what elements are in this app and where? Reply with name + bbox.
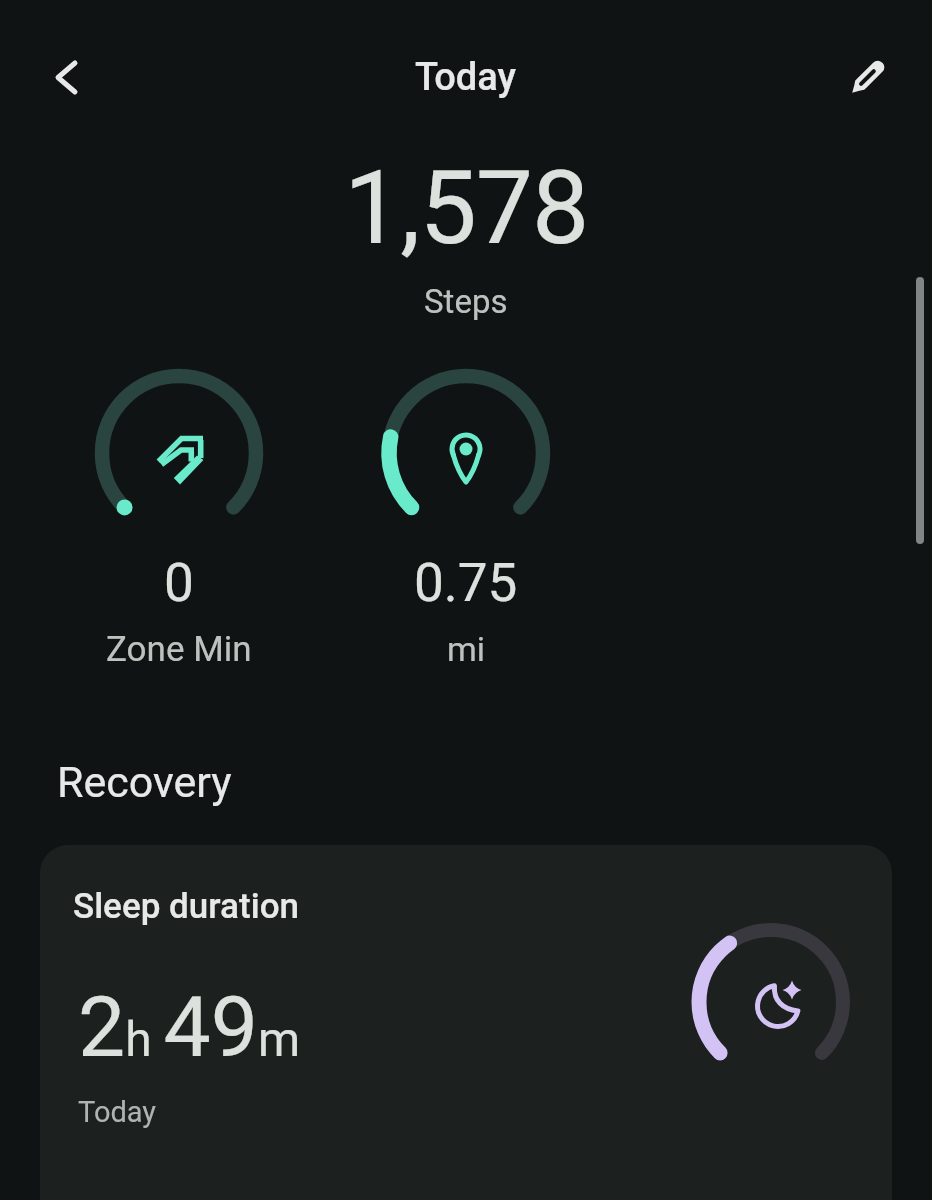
staticText: Today [415,55,517,100]
button[interactable] [377,365,555,670]
staticText: 0.75 [414,552,518,614]
button[interactable]: Sleep duration [40,845,892,1200]
button[interactable] [90,365,268,670]
staticText: Sleep duration [73,886,300,927]
button[interactable] [842,54,890,102]
button[interactable] [330,145,602,325]
staticText: Today [78,1095,157,1129]
staticText: Zone Min [106,629,252,670]
staticText: 2h 49m [78,978,301,1076]
staticText: Steps [424,282,508,321]
staticText: Recovery [57,757,232,807]
staticText: 0 [164,552,194,614]
button[interactable] [43,53,91,101]
staticText: mi [447,629,486,669]
staticText: 1,578 [344,148,589,268]
